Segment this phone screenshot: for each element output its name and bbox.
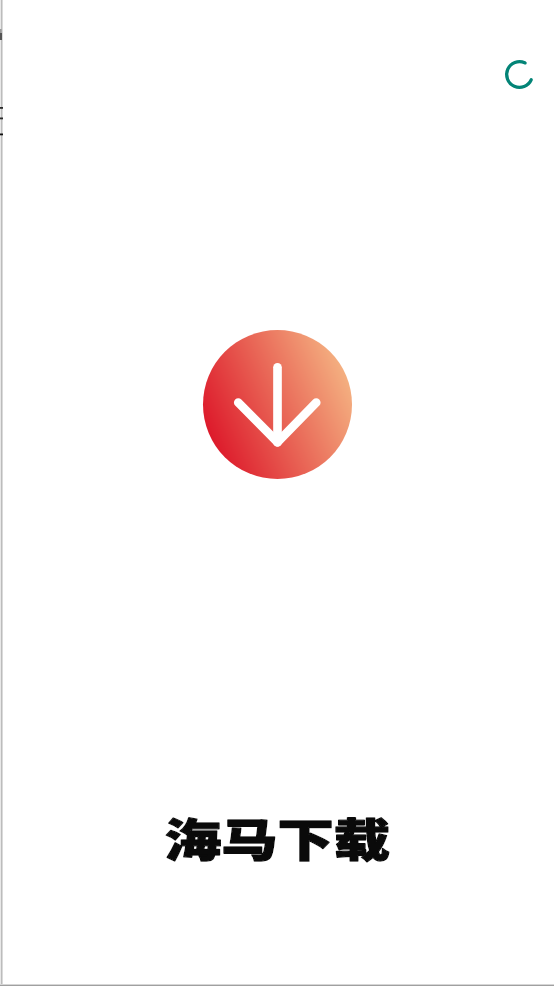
staticText: 海马下载	[164, 805, 391, 870]
staticText: 海马下载	[164, 805, 391, 870]
button[interactable]: Loading	[505, 60, 534, 89]
button[interactable]: Download	[203, 330, 352, 479]
